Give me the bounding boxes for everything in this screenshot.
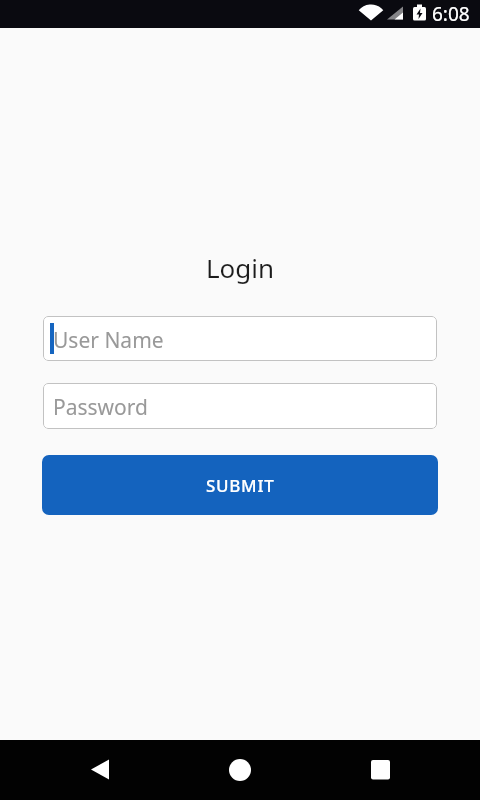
button[interactable]	[160, 740, 320, 800]
button[interactable]	[0, 740, 160, 800]
button[interactable]	[320, 740, 480, 800]
staticText: User Name	[53, 326, 164, 355]
staticText: SUBMIT	[206, 474, 275, 497]
staticText: 6:08	[432, 1, 470, 27]
button[interactable]: SUBMIT	[42, 455, 438, 515]
button[interactable]: User Name	[43, 316, 437, 361]
staticText: Password	[53, 393, 148, 422]
staticText: Login	[0, 250, 480, 285]
button[interactable]: Password	[43, 383, 437, 429]
